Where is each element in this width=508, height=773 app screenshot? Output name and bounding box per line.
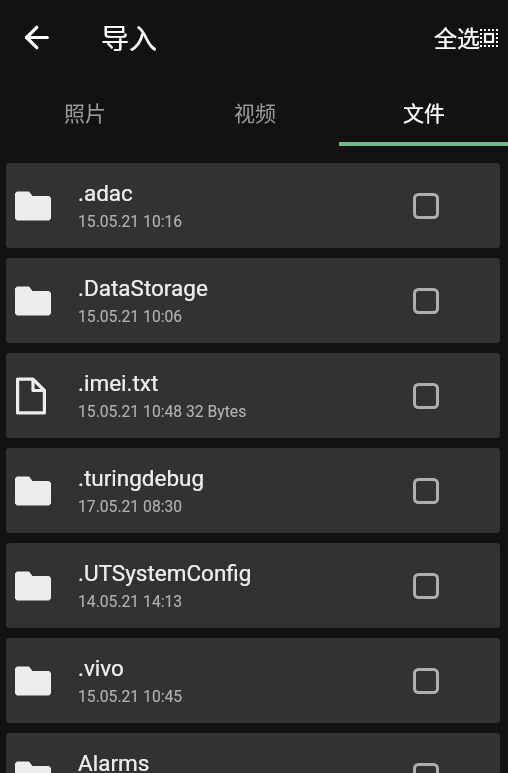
button[interactable]: Select .vivo	[413, 668, 439, 694]
staticText: .imei.txt	[78, 370, 159, 396]
staticText: 全选	[434, 20, 480, 53]
button[interactable]: Select Alarms	[413, 763, 439, 773]
staticText: 文件	[403, 97, 445, 127]
button[interactable]: 文件	[339, 82, 508, 146]
staticText: 17.05.21 08:30	[78, 497, 183, 515]
staticText: .DataStorage	[78, 275, 208, 301]
staticText: 15.05.21 10:06	[78, 307, 183, 325]
button[interactable]: Select .imei.txt	[413, 383, 439, 409]
button[interactable]: .turingdebug	[6, 448, 500, 533]
staticText: 视频	[234, 97, 276, 127]
staticText: 15.05.21 10:16	[78, 212, 183, 230]
button[interactable]: 照片	[0, 82, 170, 146]
button[interactable]: Select .turingdebug	[413, 478, 439, 504]
staticText: .UTSystemConfig	[78, 560, 252, 586]
button[interactable]: Select .UTSystemConfig	[413, 573, 439, 599]
staticText: .adac	[78, 180, 133, 206]
button[interactable]: 全选	[434, 20, 498, 53]
button[interactable]: .imei.txt	[6, 353, 500, 438]
staticText: 14.05.21 14:13	[78, 592, 183, 610]
button[interactable]: Alarms	[6, 733, 500, 773]
button[interactable]: Select .DataStorage	[413, 288, 439, 314]
staticText: 照片	[64, 97, 106, 127]
staticText: 15.05.21 10:48 32 Bytes	[78, 402, 247, 420]
staticText: .turingdebug	[78, 465, 205, 491]
staticText: .vivo	[78, 655, 124, 681]
button[interactable]: .vivo	[6, 638, 500, 723]
button[interactable]: 视频	[170, 82, 339, 146]
button[interactable]: Select .adac	[413, 193, 439, 219]
button[interactable]: Back	[13, 14, 59, 60]
button[interactable]: .UTSystemConfig	[6, 543, 500, 628]
button[interactable]: .DataStorage	[6, 258, 500, 343]
staticText: 15.05.21 10:45	[78, 687, 183, 705]
button[interactable]: .adac	[6, 163, 500, 248]
staticText: 导入	[101, 17, 158, 58]
staticText: Alarms	[78, 750, 150, 773]
